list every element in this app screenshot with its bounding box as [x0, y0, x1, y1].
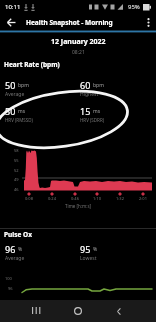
staticText: 10:11: [5, 3, 21, 11]
button[interactable]: 96: [0, 241, 78, 264]
staticText: 0:46: [71, 196, 79, 201]
staticText: ms: [93, 108, 101, 115]
button[interactable]: 15: [78, 103, 156, 125]
staticText: 50: [5, 105, 16, 117]
staticText: 50: [5, 79, 16, 91]
staticText: 55: [14, 158, 19, 163]
button[interactable]: 50: [0, 103, 78, 125]
staticText: 0:08: [25, 196, 33, 201]
staticText: 49: [14, 177, 19, 182]
staticText: 52: [14, 168, 19, 173]
staticText: 60: [80, 79, 91, 91]
staticText: 100: [5, 276, 12, 281]
staticText: HRV (SDRR): [80, 117, 105, 123]
staticText: Time [h:m:s]: [65, 203, 92, 209]
staticText: Lowest: [80, 255, 97, 262]
button[interactable]: 95: [78, 241, 156, 264]
staticText: 08:21: [72, 49, 85, 56]
staticText: 1:32: [116, 196, 124, 201]
staticText: 96: [8, 286, 13, 291]
staticText: Pulse Ox: [4, 230, 32, 239]
button[interactable]: [102, 300, 136, 322]
staticText: Health Snapshot - Morning: [26, 18, 113, 27]
staticText: 1:10: [93, 196, 101, 201]
staticText: 46: [14, 187, 19, 192]
staticText: Average: [5, 91, 25, 98]
staticText: HRV (RMSSD): [5, 117, 33, 123]
staticText: Highest: [80, 91, 99, 98]
button[interactable]: [140, 15, 156, 30]
staticText: 15: [80, 105, 91, 117]
staticText: 95: [80, 243, 91, 255]
staticText: ms: [18, 108, 26, 115]
button[interactable]: [62, 300, 94, 322]
button[interactable]: 50: [0, 77, 78, 100]
staticText: 95%: [128, 3, 140, 11]
staticText: Average: [5, 255, 25, 262]
button[interactable]: 60: [78, 77, 156, 100]
staticText: %: [18, 246, 23, 253]
staticText: 0:24: [48, 196, 56, 201]
staticText: 96: [5, 243, 16, 255]
staticText: bpm: [18, 82, 29, 89]
staticText: 12 January 2022: [51, 37, 106, 47]
button[interactable]: [0, 15, 22, 30]
staticText: bpm: [93, 82, 104, 89]
staticText: %: [93, 246, 98, 253]
staticText: Heart Rate (bpm): [4, 60, 60, 69]
staticText: 2:01: [139, 196, 147, 201]
staticText: 58: [14, 148, 19, 153]
button[interactable]: [20, 300, 56, 322]
